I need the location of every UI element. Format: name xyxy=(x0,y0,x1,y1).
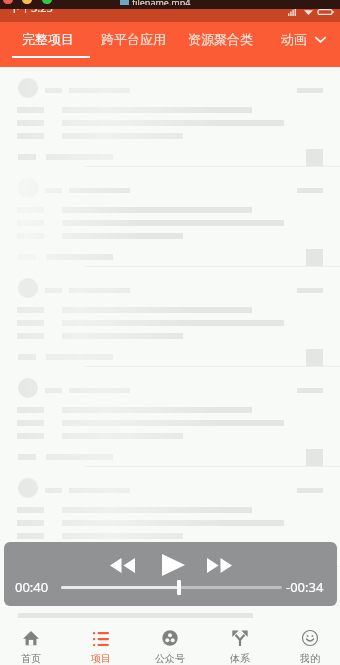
button[interactable]: 首页 xyxy=(0,630,63,665)
button[interactable]: Rewind xyxy=(104,549,141,582)
staticText: -00:34 xyxy=(286,578,324,596)
button[interactable]: 资源聚合类 xyxy=(171,22,270,67)
staticText: 公众号 xyxy=(155,652,185,665)
staticText: filename.mp4 xyxy=(132,0,191,5)
button[interactable]: 完整项目 xyxy=(0,22,95,67)
button[interactable]: 动画 xyxy=(270,22,318,67)
staticText: 项目 xyxy=(91,652,111,665)
button[interactable]: 跨平台应用 xyxy=(95,22,171,67)
staticText: 完整项目 xyxy=(22,31,74,47)
button[interactable]: 体系 xyxy=(208,630,272,665)
button[interactable]: Play xyxy=(155,548,192,581)
staticText: 00:40 xyxy=(15,578,49,596)
staticText: 体系 xyxy=(230,652,250,665)
button[interactable]: 我的 xyxy=(278,630,340,665)
staticText: 跨平台应用 xyxy=(101,31,166,47)
button[interactable]: 公众号 xyxy=(138,630,202,665)
button[interactable]: Fast forward xyxy=(201,549,238,582)
staticText: 动画 xyxy=(281,31,307,47)
staticText: 资源聚合类 xyxy=(188,31,253,47)
staticText: 下午5:25 xyxy=(9,9,53,13)
staticText: 我的 xyxy=(300,652,320,665)
button[interactable]: More tabs xyxy=(306,22,334,67)
staticText: 首页 xyxy=(21,652,41,665)
button[interactable]: 项目 xyxy=(69,630,133,665)
